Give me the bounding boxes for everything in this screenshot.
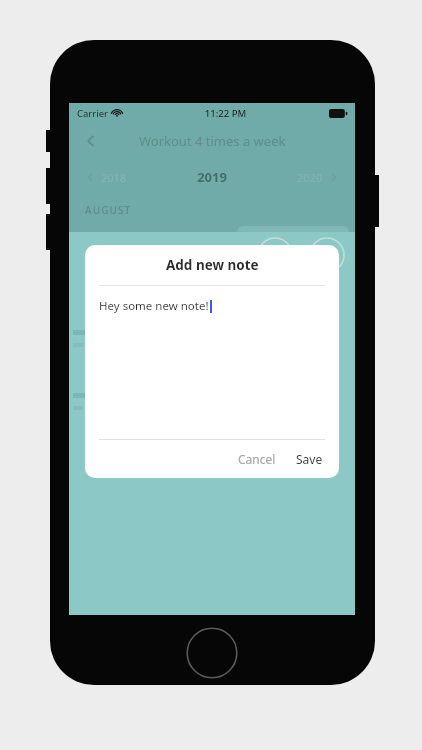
staticText: AUGUST xyxy=(85,203,132,217)
staticText: 2018 xyxy=(101,170,127,185)
button[interactable]: Cancel xyxy=(228,443,286,475)
staticText: 11:22 PM xyxy=(122,107,329,120)
staticText: Hey some new note! xyxy=(99,298,209,314)
staticText: Save xyxy=(296,451,323,467)
button[interactable]: Back xyxy=(75,125,107,157)
button[interactable]: Save xyxy=(286,443,339,475)
staticText: Cancel xyxy=(238,451,276,467)
staticText: Workout 4 times a week xyxy=(139,132,286,150)
staticText: Carrier xyxy=(77,107,108,120)
staticText: 2019 xyxy=(131,168,293,186)
staticText: Add new note xyxy=(166,256,259,274)
staticText: 2020 xyxy=(297,170,323,185)
